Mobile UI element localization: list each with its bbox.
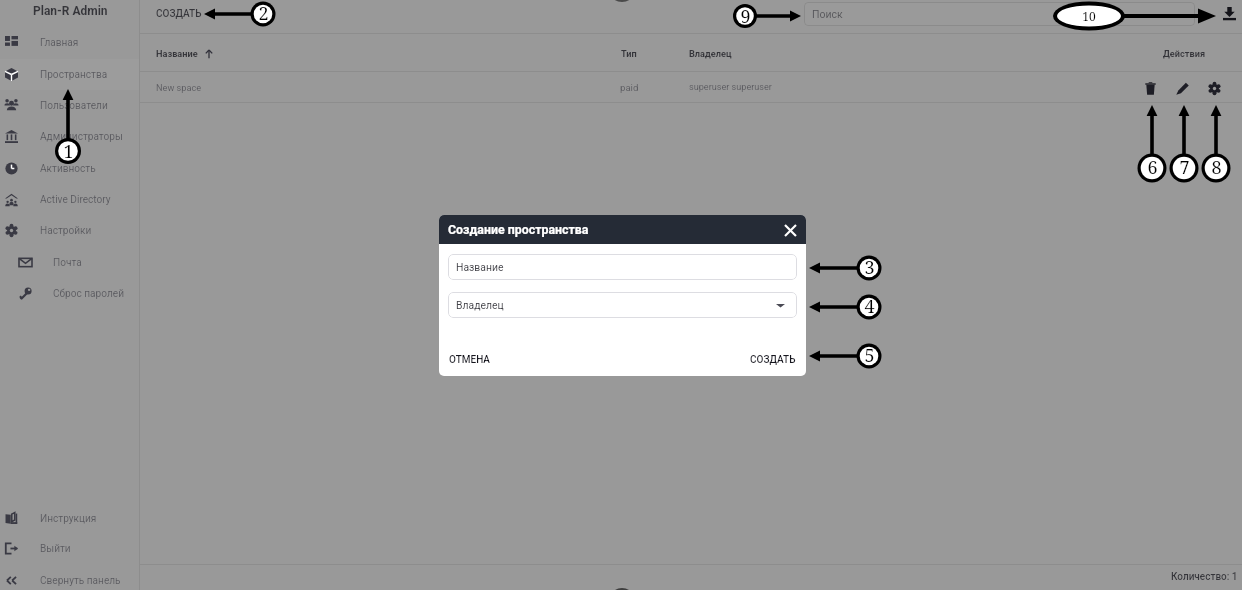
staticText: Тип <box>621 48 637 59</box>
staticText: New space <box>156 82 202 93</box>
staticText: paid <box>620 82 639 93</box>
staticText: 7 <box>1179 155 1190 180</box>
button[interactable]: ОТМЕНА <box>447 352 492 368</box>
button[interactable]: Пользователи <box>0 90 140 121</box>
button[interactable]: Владелец <box>448 292 797 318</box>
staticText: superuser superuser <box>689 82 772 93</box>
button[interactable]: Edit <box>1173 79 1191 97</box>
staticText: 5 <box>864 343 875 368</box>
button[interactable]: Delete <box>1141 79 1159 97</box>
staticText: Настройки <box>40 225 92 237</box>
button[interactable]: Активность <box>0 153 140 184</box>
button[interactable]: Почта <box>0 247 140 278</box>
staticText: Инструкция <box>40 513 97 525</box>
staticText: Пользователи <box>40 100 108 112</box>
button[interactable]: Главная <box>0 27 140 58</box>
button[interactable]: Settings <box>1205 79 1223 97</box>
staticText: 3 <box>864 255 875 280</box>
staticText: Plan-R Admin <box>33 4 108 18</box>
staticText: Владелец <box>456 299 504 311</box>
staticText: СОЗДАТЬ <box>750 354 796 366</box>
staticText: Сброс паролей <box>53 288 124 300</box>
button[interactable]: Close <box>781 221 799 239</box>
staticText: 4 <box>864 294 875 319</box>
staticText: Название <box>456 261 504 273</box>
staticText: Администраторы <box>40 131 123 143</box>
button[interactable]: Поиск <box>804 2 1195 26</box>
staticText: Создание пространства <box>448 222 589 237</box>
button[interactable]: Сброс паролей <box>0 278 140 309</box>
button[interactable]: Инструкция <box>0 503 140 534</box>
button[interactable]: СОЗДАТЬ <box>154 6 204 22</box>
staticText: 1 <box>63 139 74 164</box>
staticText: Название <box>156 48 198 59</box>
staticText: Пространства <box>40 69 108 81</box>
staticText: Активность <box>40 163 96 175</box>
staticText: Выйти <box>40 543 71 555</box>
button[interactable]: Название <box>156 48 214 59</box>
staticText: 9 <box>740 4 751 28</box>
staticText: Поиск <box>812 8 843 20</box>
button[interactable]: Выйти <box>0 533 140 564</box>
staticText: Active Directory <box>40 194 111 206</box>
staticText: 6 <box>1147 155 1158 180</box>
staticText: Количество: 1 <box>1171 571 1238 583</box>
staticText: 2 <box>258 1 269 26</box>
staticText: Главная <box>40 37 79 49</box>
staticText: 10 <box>1082 8 1096 24</box>
staticText: Владелец <box>689 48 732 59</box>
staticText: 8 <box>1211 155 1222 180</box>
button[interactable]: Название <box>448 254 797 280</box>
button[interactable]: Download <box>1218 2 1240 24</box>
staticText: Почта <box>53 257 82 269</box>
button[interactable]: Администраторы <box>0 121 140 152</box>
button[interactable]: Свернуть панель <box>0 565 140 590</box>
button[interactable]: Настройки <box>0 215 140 246</box>
staticText: Свернуть панель <box>40 575 121 587</box>
staticText: СОЗДАТЬ <box>156 8 202 20</box>
staticText: Действия <box>1163 48 1206 59</box>
button[interactable]: СОЗДАТЬ <box>748 352 798 368</box>
button[interactable]: Пространства <box>0 59 140 90</box>
staticText: ОТМЕНА <box>449 354 490 366</box>
button[interactable]: Active Directory <box>0 184 140 215</box>
